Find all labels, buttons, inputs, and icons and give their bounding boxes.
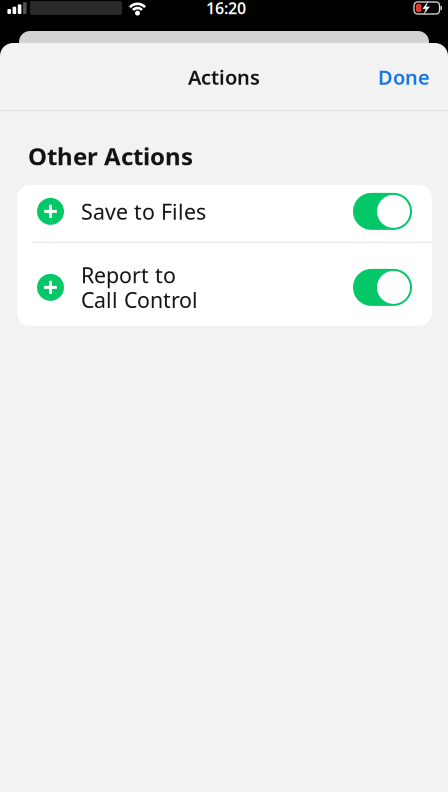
button[interactable]: Done	[368, 55, 440, 99]
button[interactable]: Save to Files	[17, 185, 432, 242]
staticText: Report to	[81, 261, 176, 289]
staticText: Save to Files	[81, 197, 206, 225]
staticText: Actions	[188, 64, 260, 90]
staticText: Call Control	[81, 286, 198, 314]
button[interactable]: Report to	[17, 243, 432, 326]
staticText: Done	[378, 64, 430, 90]
staticText: Other Actions	[28, 140, 193, 172]
staticText: 16:20	[206, 0, 246, 19]
